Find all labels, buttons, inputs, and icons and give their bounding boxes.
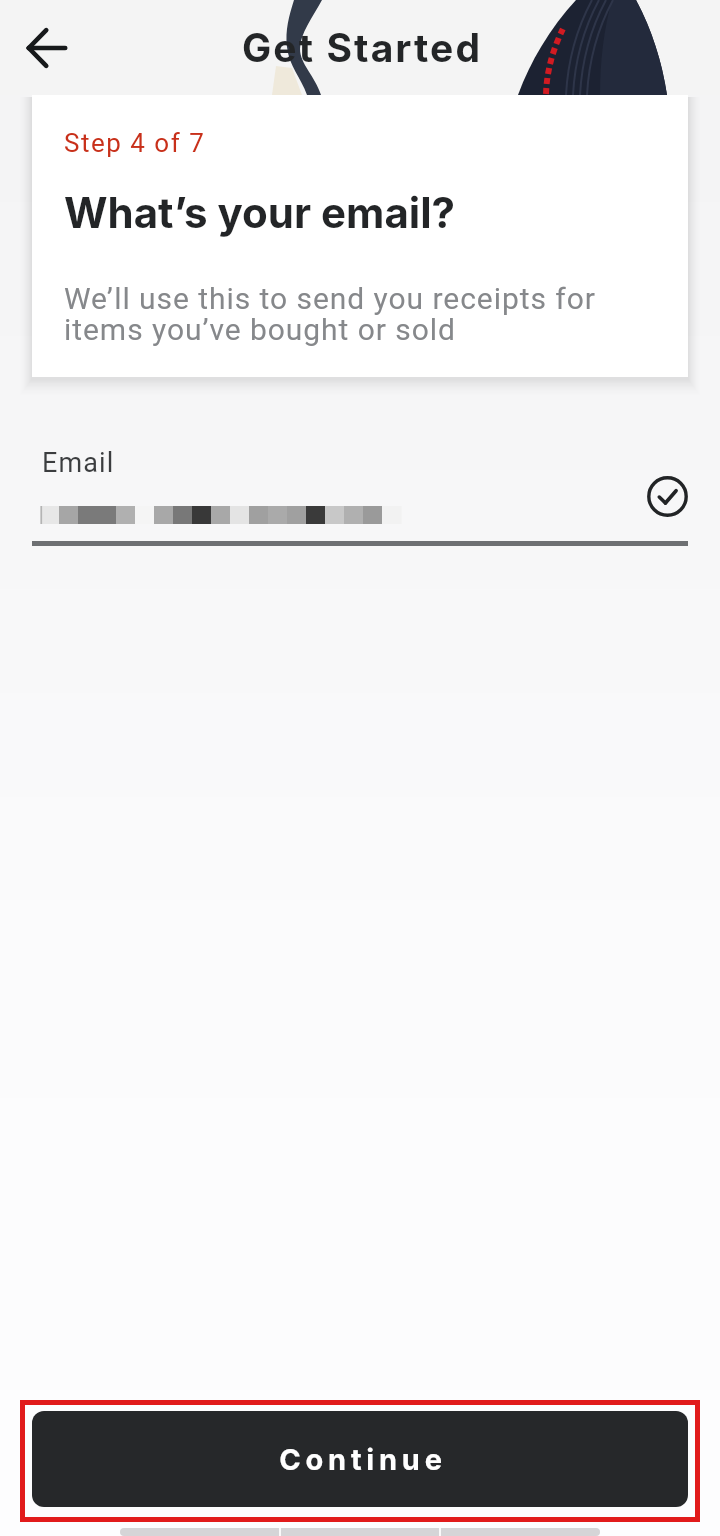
staticText: What’s your email? — [64, 187, 456, 238]
staticText: Step 4 of 7 — [64, 128, 206, 158]
staticText: We’ll use this to send you receipts for … — [64, 281, 596, 347]
button[interactable]: Email valid — [639, 468, 695, 524]
button[interactable]: Continue — [32, 1411, 688, 1507]
staticText: Get Started — [242, 24, 483, 71]
button[interactable]: Back — [10, 11, 84, 85]
staticText: Email — [42, 447, 115, 479]
staticText: Continue — [279, 1442, 447, 1477]
